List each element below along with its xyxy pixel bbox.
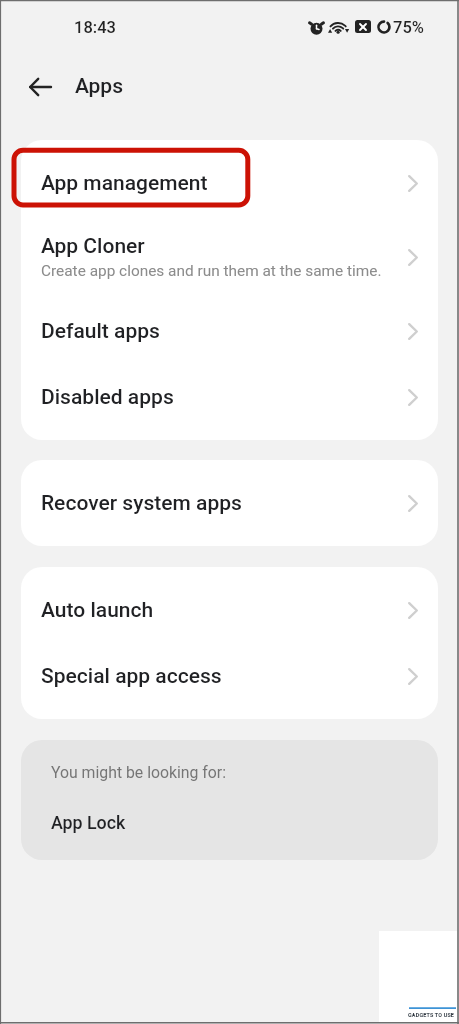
staticText: Auto launch	[41, 598, 154, 623]
staticText: Default apps	[41, 319, 160, 344]
button[interactable]: You might be looking for:	[21, 740, 438, 860]
button[interactable]: Recover system apps	[21, 470, 438, 536]
button[interactable]: App management	[21, 150, 438, 216]
button[interactable]: Back	[17, 63, 64, 110]
staticText: App Lock	[51, 812, 126, 833]
staticText: 75%	[393, 18, 424, 37]
staticText: Special app access	[41, 664, 222, 689]
button[interactable]: Special app access	[21, 643, 438, 709]
button[interactable]: Auto launch	[21, 577, 438, 643]
staticText: 18:43	[74, 18, 116, 37]
staticText: Create app clones and run them at the sa…	[41, 262, 382, 280]
staticText: Recover system apps	[41, 491, 242, 516]
button[interactable]: Disabled apps	[21, 364, 438, 430]
staticText: You might be looking for:	[51, 763, 227, 782]
staticText: App Cloner	[41, 234, 145, 259]
button[interactable]: Default apps	[21, 298, 438, 364]
staticText: Apps	[75, 74, 123, 99]
staticText: GADGETS TO USE	[408, 1012, 455, 1018]
staticText: Disabled apps	[41, 385, 174, 410]
button[interactable]: App Cloner	[21, 216, 438, 298]
staticText: App management	[41, 171, 208, 196]
